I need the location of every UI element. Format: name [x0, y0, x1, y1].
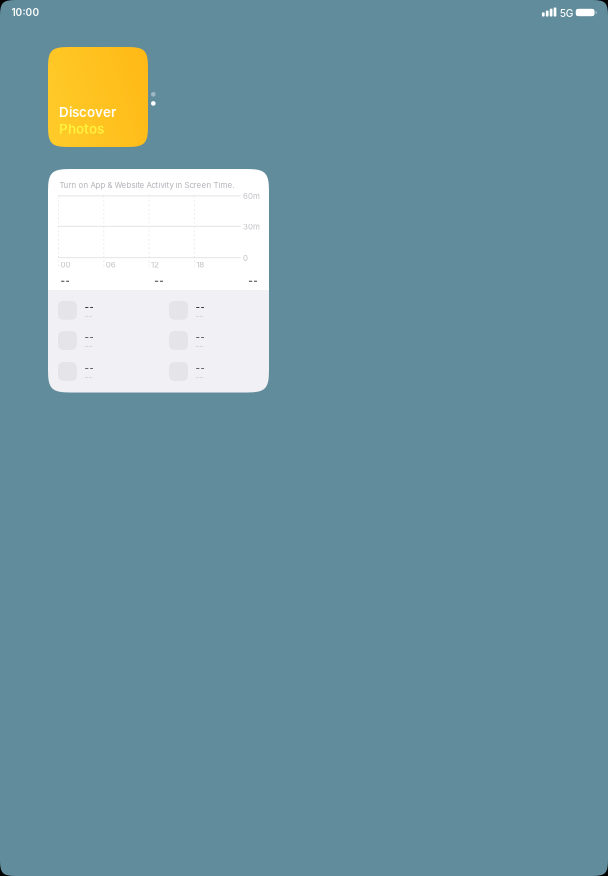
- staticText: 06: [106, 260, 116, 269]
- staticText: --: [84, 301, 94, 312]
- staticText: --: [84, 372, 92, 382]
- staticText: --: [195, 331, 205, 343]
- button[interactable]: Turn on App & Website Activity in Screen…: [48, 169, 269, 392]
- staticText: --: [60, 274, 70, 286]
- staticText: 60m: [243, 191, 260, 201]
- staticText: --: [248, 274, 258, 286]
- staticText: 00: [60, 260, 70, 269]
- staticText: --: [84, 311, 92, 321]
- button[interactable]: Discover: [48, 47, 148, 147]
- staticText: 30m: [243, 222, 260, 231]
- staticText: --: [195, 301, 205, 312]
- staticText: Discover: [59, 104, 116, 120]
- staticText: 5G: [560, 7, 574, 19]
- staticText: --: [84, 341, 92, 351]
- staticText: 0: [243, 253, 248, 263]
- staticText: Turn on App & Website Activity in Screen…: [59, 180, 234, 190]
- staticText: --: [195, 372, 203, 382]
- staticText: --: [84, 331, 94, 343]
- staticText: --: [195, 311, 203, 321]
- staticText: 18: [196, 260, 204, 269]
- staticText: --: [195, 362, 205, 374]
- staticText: Photos: [59, 121, 104, 137]
- staticText: --: [84, 362, 94, 374]
- staticText: 10:00: [12, 6, 40, 18]
- staticText: --: [154, 274, 164, 286]
- staticText: 12: [151, 260, 159, 269]
- staticText: --: [195, 341, 203, 351]
